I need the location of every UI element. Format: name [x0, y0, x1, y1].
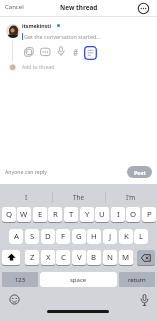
button[interactable]: Q — [2, 207, 16, 222]
button[interactable] — [40, 47, 51, 57]
button[interactable]: Anyone can reply — [5, 168, 47, 175]
staticText: itsmekinsti — [22, 22, 52, 29]
staticText: A — [14, 231, 19, 242]
staticText: U — [99, 209, 105, 220]
button[interactable]: E — [33, 207, 47, 222]
button[interactable]: V — [72, 250, 86, 265]
button[interactable] — [24, 47, 34, 57]
button[interactable] — [2, 250, 20, 265]
button[interactable]: U — [95, 207, 109, 222]
button[interactable] — [140, 294, 149, 307]
staticText: R — [53, 209, 58, 220]
button[interactable]: W — [17, 207, 31, 222]
button[interactable]: space — [40, 272, 117, 287]
button[interactable]: I'm — [105, 189, 157, 206]
button[interactable]: K — [119, 229, 133, 244]
staticText: Post — [134, 169, 146, 176]
button[interactable]: S — [25, 229, 39, 244]
staticText: E — [38, 209, 43, 220]
button[interactable]: 123 — [2, 272, 38, 287]
staticText: O — [130, 209, 137, 220]
button[interactable] — [9, 294, 20, 305]
button[interactable]: J — [103, 229, 117, 244]
button[interactable]: B — [87, 250, 101, 265]
button[interactable]: Y — [80, 207, 94, 222]
button[interactable] — [84, 46, 97, 60]
staticText: Add to thread — [22, 64, 55, 71]
staticText: D — [45, 231, 51, 242]
button[interactable]: # — [73, 47, 79, 58]
button[interactable]: I — [0, 189, 52, 206]
button[interactable]: D — [41, 229, 55, 244]
staticText: N — [107, 252, 113, 263]
button[interactable]: F — [56, 229, 70, 244]
staticText: New thread — [60, 3, 98, 12]
button[interactable]: Add to thread — [22, 64, 55, 71]
staticText: M — [122, 252, 130, 263]
staticText: W — [20, 209, 28, 220]
button[interactable]: O — [126, 207, 140, 222]
button[interactable]: T — [64, 207, 78, 222]
staticText: I — [25, 193, 28, 202]
button[interactable]: H — [87, 229, 101, 244]
button[interactable]: G — [72, 229, 86, 244]
button[interactable]: P — [142, 207, 156, 222]
staticText: 123 — [15, 276, 25, 284]
button[interactable]: N — [103, 250, 117, 265]
button[interactable]: Z — [25, 250, 39, 265]
staticText: I'm — [126, 193, 136, 202]
staticText: F — [61, 231, 66, 242]
button[interactable]: A — [9, 229, 23, 244]
button[interactable] — [137, 2, 150, 15]
button[interactable] — [57, 46, 65, 57]
staticText: I — [117, 209, 120, 220]
button[interactable]: The — [52, 189, 104, 206]
staticText: B — [91, 252, 97, 263]
staticText: return — [128, 276, 146, 284]
button[interactable]: L — [134, 229, 148, 244]
staticText: K — [124, 231, 129, 242]
staticText: Q — [6, 209, 13, 220]
staticText: Y — [85, 209, 90, 220]
staticText: L — [139, 231, 144, 242]
staticText: Get the conversation started... — [24, 33, 101, 40]
button[interactable] — [137, 250, 155, 265]
button[interactable]: M — [119, 250, 133, 265]
button[interactable]: R — [48, 207, 62, 222]
staticText: C — [61, 252, 66, 263]
staticText: X — [46, 252, 51, 263]
staticText: Z — [30, 252, 35, 263]
staticText: S — [30, 231, 35, 242]
staticText: The — [73, 193, 84, 202]
button[interactable]: Cancel — [5, 3, 24, 11]
staticText: T — [69, 209, 74, 220]
staticText: V — [77, 252, 82, 263]
staticText: P — [147, 209, 152, 220]
button[interactable]: return — [119, 272, 155, 287]
staticText: H — [91, 231, 97, 242]
staticText: Cancel — [5, 3, 24, 11]
button[interactable]: Post — [127, 166, 152, 178]
staticText: G — [76, 231, 82, 242]
button[interactable]: C — [56, 250, 70, 265]
button[interactable]: I — [111, 207, 125, 222]
staticText: space — [70, 276, 87, 284]
staticText: J — [109, 231, 112, 242]
button[interactable]: X — [41, 250, 55, 265]
